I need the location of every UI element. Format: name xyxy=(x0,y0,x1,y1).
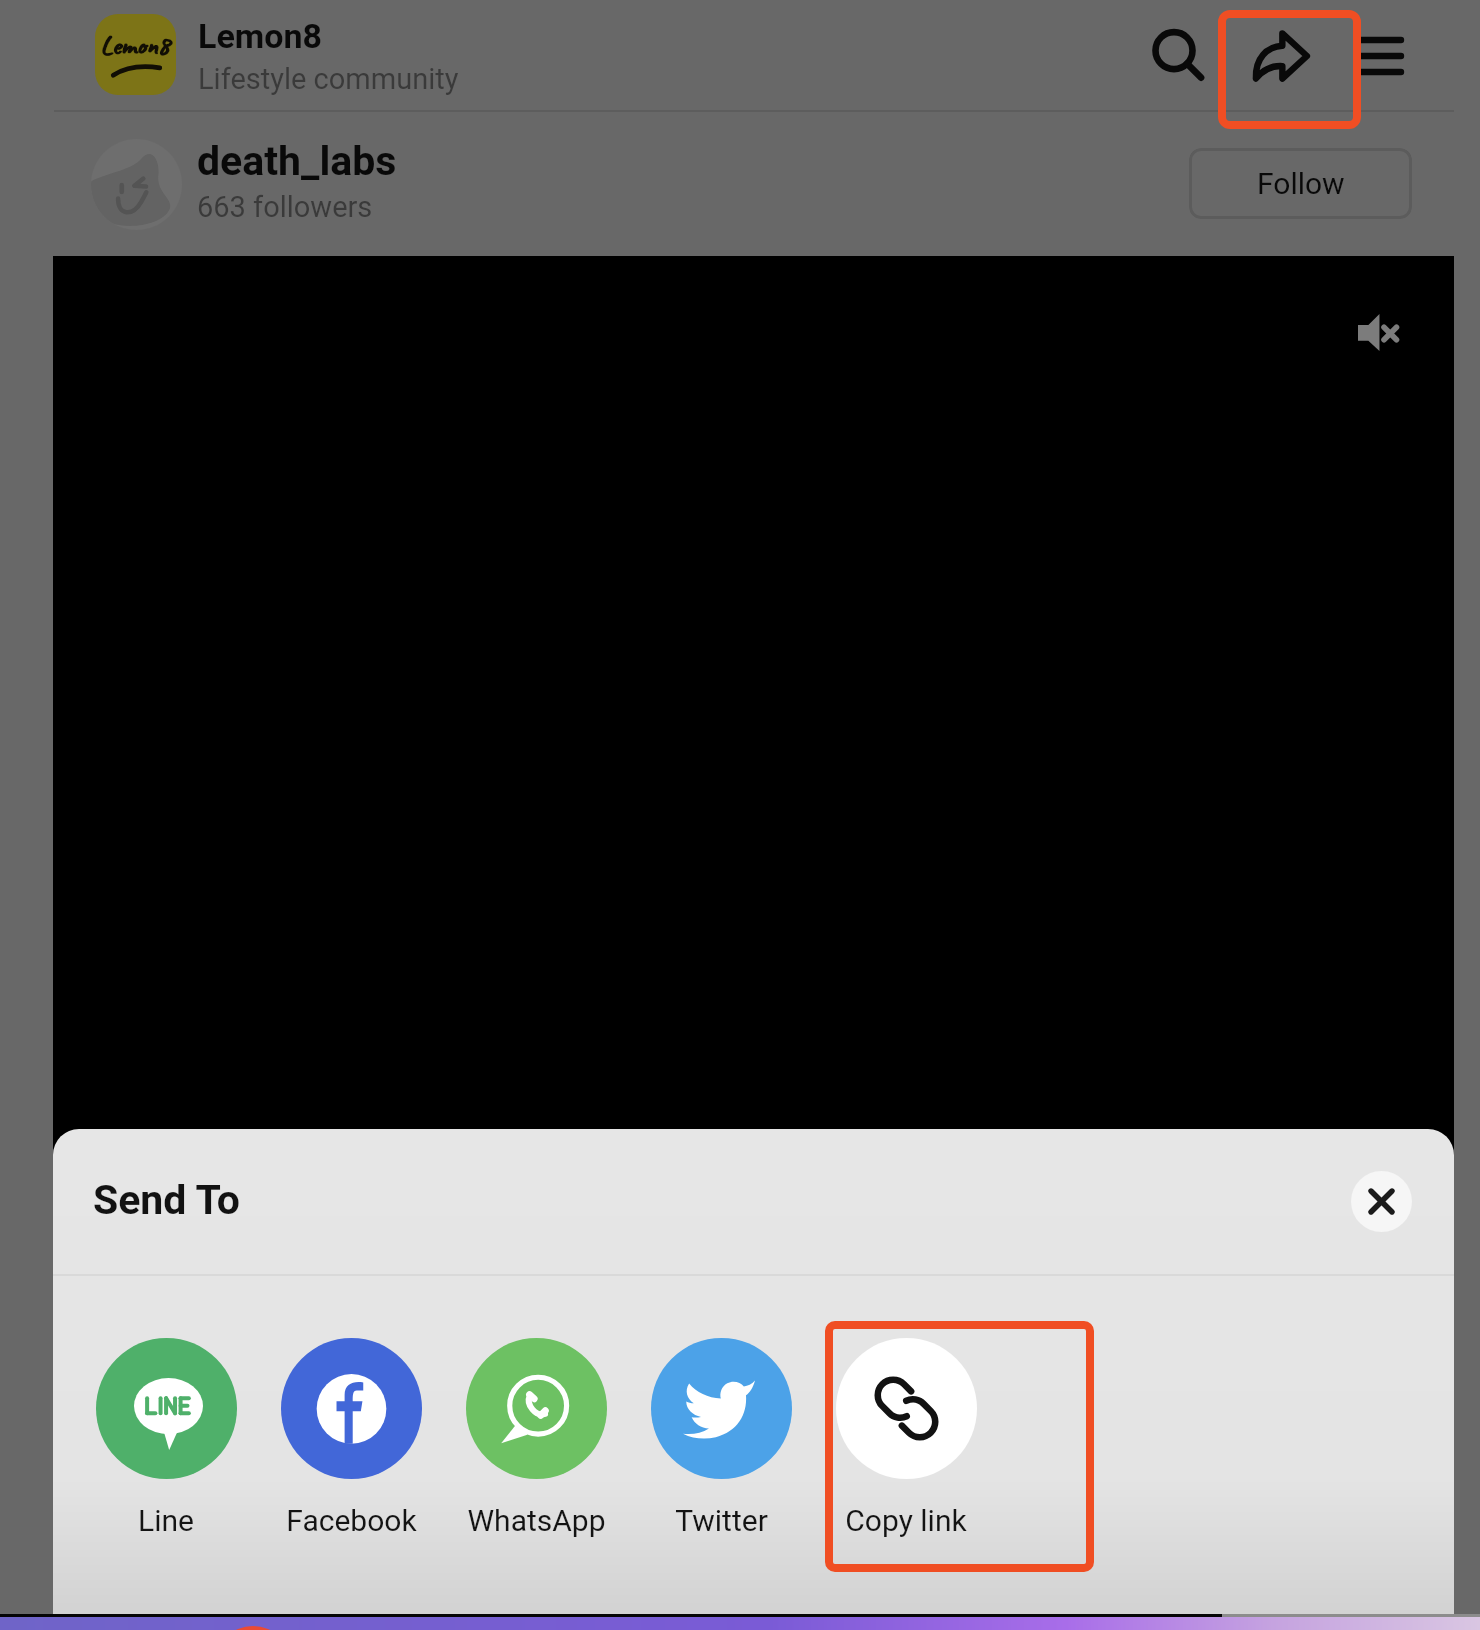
staticText: death_labs xyxy=(197,137,397,185)
staticText: Copy link xyxy=(845,1503,967,1538)
button[interactable]: WhatsApp xyxy=(444,1338,628,1538)
staticText: Lemon8 xyxy=(101,28,171,62)
button[interactable]: Menu xyxy=(1347,16,1415,84)
staticText: Line xyxy=(138,1503,194,1538)
staticText: Twitter xyxy=(675,1503,768,1538)
button[interactable]: Follow xyxy=(1189,148,1412,219)
staticText: 663 followers xyxy=(197,190,373,224)
staticText: Lemon8 xyxy=(100,28,170,62)
staticText: Send To xyxy=(93,1176,240,1224)
staticText: Follow xyxy=(1257,166,1345,201)
staticText: Lifestyle community xyxy=(198,62,459,96)
button[interactable]: Share xyxy=(1247,22,1315,90)
button[interactable]: Twitter xyxy=(629,1338,813,1538)
button[interactable]: Copy link xyxy=(814,1338,998,1538)
button[interactable]: Facebook xyxy=(259,1338,443,1538)
button[interactable]: Search xyxy=(1142,15,1210,83)
staticText: Lemon8 xyxy=(198,16,322,56)
button[interactable]: Close xyxy=(1351,1171,1412,1232)
staticText: WhatsApp xyxy=(467,1503,606,1538)
button[interactable]: Line xyxy=(74,1338,258,1538)
staticText: Facebook xyxy=(286,1503,417,1538)
